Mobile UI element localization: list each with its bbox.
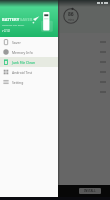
button[interactable] (0, 77, 110, 86)
staticText: INSTALL (84, 189, 96, 193)
button[interactable]: Memory Info (0, 47, 58, 57)
button[interactable]: Android Test (0, 67, 58, 77)
button[interactable] (0, 57, 110, 66)
button[interactable]: INSTALL (79, 188, 101, 194)
button[interactable] (0, 47, 110, 56)
staticText: Memory Info (12, 50, 33, 55)
button[interactable] (0, 37, 110, 46)
staticText: Optimize and Boost (2, 23, 25, 26)
button[interactable]: Junk File Clean (0, 57, 58, 67)
button[interactable]: Saver (0, 37, 58, 47)
button[interactable]: Setting (0, 77, 58, 87)
button[interactable]: INSTALL (0, 185, 110, 197)
button[interactable] (0, 87, 110, 96)
staticText: 86 (68, 11, 74, 18)
staticText: Saver (12, 40, 21, 45)
staticText: SAVER (20, 17, 33, 22)
staticText: v 2.1.0 (2, 29, 10, 33)
staticText: BATTERY (2, 17, 20, 22)
staticText: Android Test (12, 70, 32, 75)
staticText: mins (68, 18, 74, 22)
staticText: Setting (12, 80, 24, 85)
staticText: Junk File Clean (12, 60, 36, 65)
button[interactable] (0, 67, 110, 76)
